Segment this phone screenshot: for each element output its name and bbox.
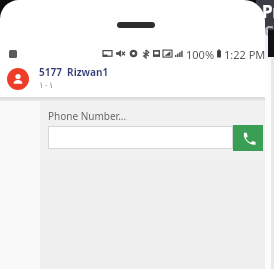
staticText: 1:22 PM bbox=[224, 47, 265, 60]
button[interactable]: 5177 Rizwan1 bbox=[0, 63, 265, 95]
staticText: 5177 Rizwan1 bbox=[39, 65, 109, 79]
button[interactable] bbox=[48, 126, 233, 149]
button[interactable]: Call bbox=[233, 125, 263, 151]
staticText: C bbox=[264, 20, 274, 40]
staticText: ١٠١ bbox=[39, 80, 54, 90]
staticText: 100% bbox=[186, 47, 215, 60]
staticText: Pr bbox=[262, 0, 274, 23]
staticText: Phone Number... bbox=[48, 109, 127, 123]
